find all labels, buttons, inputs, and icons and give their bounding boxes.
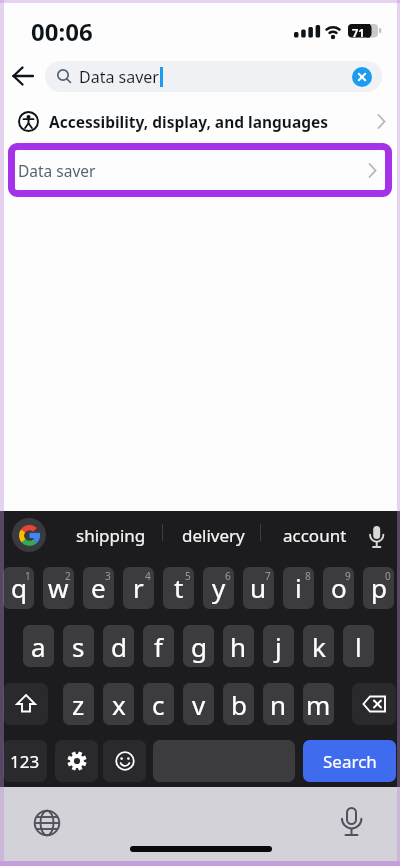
- button[interactable]: [12, 518, 46, 552]
- staticText: 0: [385, 569, 391, 583]
- staticText: t: [174, 570, 184, 605]
- staticText: shipping: [76, 524, 146, 547]
- staticText: delivery: [182, 524, 245, 547]
- staticText: 2: [65, 569, 71, 583]
- button[interactable]: t: [163, 567, 194, 609]
- button[interactable]: n: [263, 683, 294, 725]
- button[interactable]: k: [303, 625, 334, 667]
- staticText: b: [231, 687, 247, 722]
- staticText: 1: [25, 569, 31, 583]
- button[interactable]: b: [223, 683, 254, 725]
- staticText: 4: [145, 569, 151, 583]
- staticText: Data saver: [18, 160, 96, 181]
- button[interactable]: [33, 809, 61, 837]
- staticText: 5: [185, 569, 191, 583]
- staticText: z: [72, 687, 85, 722]
- button[interactable]: l: [343, 625, 374, 667]
- staticText: r: [133, 570, 144, 605]
- staticText: w: [48, 570, 69, 605]
- staticText: u: [250, 570, 267, 605]
- button[interactable]: [103, 740, 146, 782]
- staticText: p: [371, 570, 387, 605]
- staticText: j: [275, 629, 282, 664]
- button[interactable]: a: [23, 625, 54, 667]
- staticText: o: [331, 570, 347, 605]
- button[interactable]: r: [123, 567, 154, 609]
- button[interactable]: shipping: [70, 523, 152, 548]
- button[interactable]: 123: [3, 740, 47, 782]
- staticText: 6: [225, 569, 231, 583]
- button[interactable]: y: [203, 567, 234, 609]
- button[interactable]: [352, 67, 372, 87]
- button[interactable]: p: [363, 567, 394, 609]
- staticText: f: [154, 629, 163, 664]
- staticText: c: [152, 687, 165, 722]
- button[interactable]: i: [283, 567, 314, 609]
- staticText: h: [230, 629, 247, 664]
- staticText: 9: [345, 569, 351, 583]
- staticText: i: [295, 570, 302, 605]
- staticText: n: [270, 687, 287, 722]
- staticText: m: [306, 687, 331, 722]
- button[interactable]: z: [63, 683, 94, 725]
- button[interactable]: [12, 64, 35, 88]
- button[interactable]: [340, 807, 363, 838]
- button[interactable]: Data saver: [45, 61, 382, 92]
- staticText: 7: [265, 569, 271, 583]
- button[interactable]: v: [183, 683, 214, 725]
- staticText: 123: [10, 750, 40, 773]
- button[interactable]: [369, 526, 384, 549]
- staticText: 8: [305, 569, 311, 583]
- button[interactable]: u: [243, 567, 274, 609]
- button[interactable]: d: [103, 625, 134, 667]
- staticText: Accessibility, display, and languages: [49, 111, 329, 132]
- button[interactable]: Data saver: [8, 143, 392, 197]
- staticText: y: [212, 570, 226, 605]
- staticText: k: [312, 629, 326, 664]
- staticText: d: [111, 629, 127, 664]
- button[interactable]: s: [63, 625, 94, 667]
- staticText: s: [72, 629, 85, 664]
- button[interactable]: f: [143, 625, 174, 667]
- button[interactable]: g: [183, 625, 214, 667]
- staticText: Search: [323, 750, 377, 773]
- button[interactable]: q: [3, 567, 34, 609]
- button[interactable]: w: [43, 567, 74, 609]
- button[interactable]: [352, 683, 396, 725]
- button[interactable]: h: [223, 625, 254, 667]
- button[interactable]: x: [103, 683, 134, 725]
- staticText: 00:06: [31, 15, 93, 48]
- staticText: e: [91, 570, 106, 605]
- staticText: l: [355, 629, 362, 664]
- staticText: a: [31, 629, 46, 664]
- button[interactable]: delivery: [172, 523, 254, 548]
- staticText: g: [191, 629, 207, 664]
- button[interactable]: account: [274, 523, 356, 548]
- button[interactable]: o: [323, 567, 354, 609]
- staticText: v: [192, 687, 206, 722]
- staticText: q: [11, 570, 27, 605]
- staticText: x: [112, 687, 126, 722]
- staticText: account: [283, 524, 347, 547]
- button[interactable]: m: [303, 683, 334, 725]
- button[interactable]: [55, 740, 98, 782]
- button[interactable]: [3, 683, 48, 725]
- button[interactable]: c: [143, 683, 174, 725]
- button[interactable]: Accessibility, display, and languages: [0, 99, 400, 144]
- staticText: 3: [105, 569, 111, 583]
- staticText: Data saver: [79, 66, 159, 88]
- button[interactable]: e: [83, 567, 114, 609]
- staticText: 71: [352, 25, 365, 40]
- button[interactable]: j: [263, 625, 294, 667]
- button[interactable]: Search: [303, 740, 396, 782]
